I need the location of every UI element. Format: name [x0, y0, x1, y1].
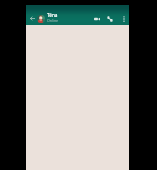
- button[interactable]: Téna: [36, 10, 89, 25]
- button[interactable]: Video call: [91, 13, 103, 25]
- staticText: Online: [47, 18, 59, 23]
- button[interactable]: Voice call: [104, 13, 116, 25]
- staticText: Téna: [47, 12, 58, 18]
- button[interactable]: More options: [118, 13, 130, 25]
- button[interactable]: Back: [27, 13, 37, 23]
